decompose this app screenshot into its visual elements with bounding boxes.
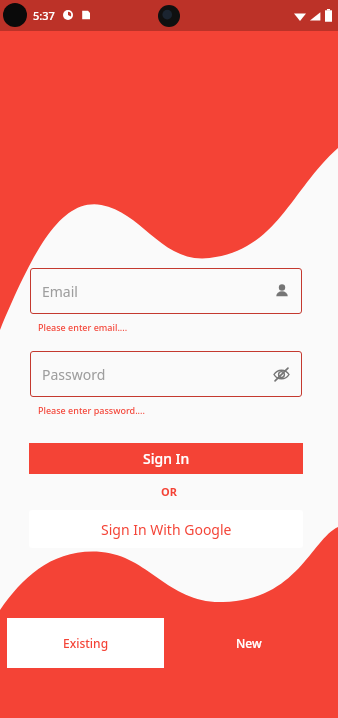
staticText: Sign In With Google [101, 520, 232, 539]
staticText: Password [42, 365, 106, 384]
button[interactable]: Sign In [29, 443, 303, 474]
staticText: New [236, 635, 262, 651]
staticText: 5:37 [33, 8, 55, 23]
button[interactable]: New [166, 618, 331, 668]
button[interactable]: Password [30, 351, 302, 397]
button[interactable]: Sign In With Google [29, 510, 303, 548]
button[interactable]: Show password [273, 366, 290, 383]
staticText: Please enter email.... [38, 321, 128, 333]
staticText: Please enter password.... [38, 404, 145, 416]
staticText: Sign In [143, 449, 190, 468]
staticText: Email [42, 282, 78, 301]
button[interactable]: Email [30, 268, 302, 314]
staticText: OR [161, 484, 177, 499]
staticText: Existing [63, 635, 109, 651]
other: Person [274, 283, 290, 299]
button[interactable]: Existing [7, 618, 164, 668]
